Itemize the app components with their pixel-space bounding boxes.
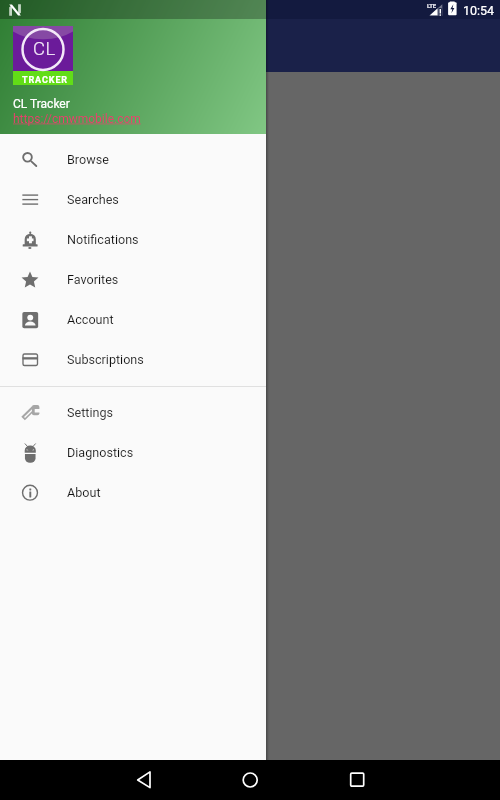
staticText: CL	[33, 38, 56, 60]
button[interactable]: About	[0, 473, 266, 513]
staticText: CL Tracker	[13, 97, 70, 111]
staticText: Notifications	[67, 232, 139, 247]
button[interactable]: Browse	[0, 140, 266, 180]
button[interactable]: Searches	[0, 180, 266, 220]
staticText: Subscriptions	[67, 352, 144, 367]
staticText: https://cmwmobile.com	[13, 112, 141, 126]
button[interactable]: Settings	[0, 393, 266, 433]
button[interactable]: Account	[0, 300, 266, 340]
staticText: About	[67, 485, 101, 500]
staticText: 10:54	[463, 3, 495, 18]
staticText: Settings	[67, 405, 113, 420]
button[interactable]: Back	[130, 760, 170, 800]
staticText: Favorites	[67, 272, 119, 287]
button[interactable]: Recent apps	[337, 760, 377, 800]
button[interactable]: Subscriptions	[0, 340, 266, 380]
staticText: Browse	[67, 152, 109, 167]
staticText: Searches	[67, 192, 119, 207]
button[interactable]: CL	[0, 0, 266, 134]
staticText: LTE	[427, 2, 436, 9]
staticText: TRACKER	[22, 75, 68, 86]
button[interactable]: Home	[230, 760, 270, 800]
button[interactable]: Diagnostics	[0, 433, 266, 473]
button[interactable]: Favorites	[0, 260, 266, 300]
staticText: Account	[67, 312, 114, 327]
staticText: Diagnostics	[67, 445, 134, 460]
button[interactable]: Notifications	[0, 220, 266, 260]
